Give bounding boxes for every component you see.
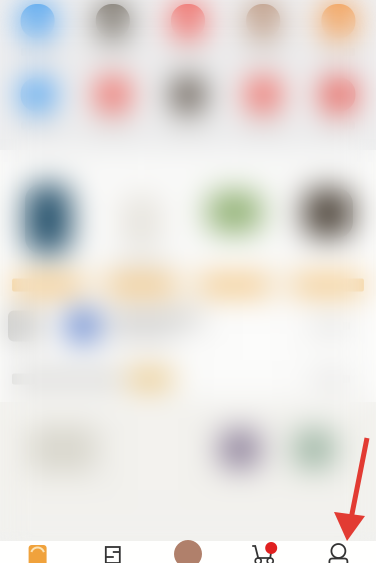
button[interactable]: Live: [150, 541, 226, 563]
button[interactable]: My Taobao: [301, 541, 376, 563]
button[interactable]: [301, 0, 376, 68]
button[interactable]: [283, 162, 373, 296]
button[interactable]: [226, 0, 301, 68]
button[interactable]: [75, 0, 150, 68]
button[interactable]: [150, 68, 226, 139]
button[interactable]: Subscriptions: [75, 541, 150, 563]
button[interactable]: [96, 162, 186, 296]
button[interactable]: Home: [0, 541, 75, 563]
button[interactable]: [0, 296, 376, 356]
button[interactable]: [0, 0, 75, 68]
button[interactable]: Shopping cart: [226, 541, 301, 563]
button[interactable]: [301, 68, 376, 139]
button[interactable]: [3, 162, 93, 296]
button[interactable]: [150, 0, 226, 68]
button[interactable]: [0, 68, 75, 139]
button[interactable]: [226, 68, 301, 139]
button[interactable]: [0, 356, 376, 402]
button[interactable]: [75, 68, 150, 139]
button[interactable]: [189, 162, 280, 296]
